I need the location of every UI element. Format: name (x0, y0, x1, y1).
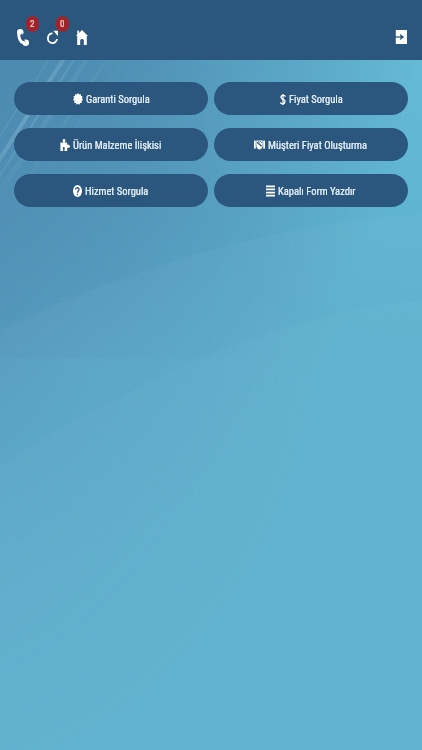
button[interactable]: Logout (388, 14, 414, 46)
staticText: Hizmet Sorgula (85, 185, 149, 197)
staticText: Müşteri Fiyat Oluşturma (268, 139, 368, 151)
button[interactable]: Kapalı Form Yazdır (214, 174, 408, 207)
staticText: Ürün Malzeme İlişkisi (73, 139, 162, 151)
staticText: 0 (60, 19, 65, 30)
button[interactable]: Ürün Malzeme İlişkisi (14, 128, 208, 161)
button[interactable]: Fiyat Sorgula (214, 82, 408, 115)
staticText: Fiyat Sorgula (289, 93, 343, 105)
staticText: Kapalı Form Yazdır (278, 185, 356, 197)
button[interactable]: Hizmet Sorgula (14, 174, 208, 207)
button[interactable]: Home (70, 14, 94, 46)
staticText: 2 (30, 19, 35, 30)
staticText: Garanti Sorgula (86, 93, 150, 105)
button[interactable]: Calls (11, 14, 39, 46)
button[interactable]: Müşteri Fiyat Oluşturma (214, 128, 408, 161)
button[interactable]: Garanti Sorgula (14, 82, 208, 115)
button[interactable]: Refresh (41, 14, 69, 46)
